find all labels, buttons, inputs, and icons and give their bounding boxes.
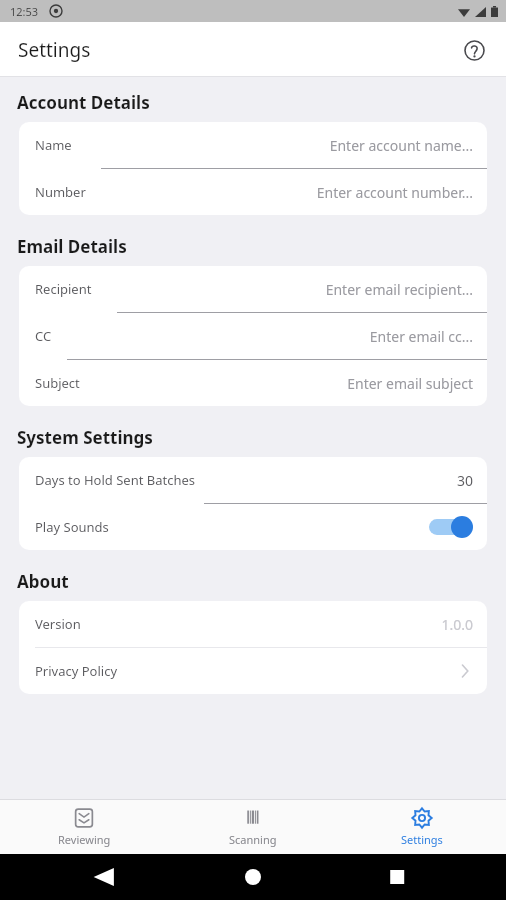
staticText: Settings <box>401 832 443 847</box>
staticText: Email Details <box>17 235 127 258</box>
button[interactable]: Reviewing <box>0 803 168 851</box>
staticText: System Settings <box>17 426 153 449</box>
button[interactable]: Subject <box>19 360 487 406</box>
button[interactable]: Play Sounds <box>19 504 487 550</box>
staticText: CC <box>35 327 52 345</box>
staticText: 1.0.0 <box>441 615 473 634</box>
button[interactable]: Settings <box>337 803 506 851</box>
button[interactable]: CC <box>19 313 487 359</box>
staticText: 12:53 <box>10 4 39 19</box>
staticText: Enter email subject <box>347 374 473 393</box>
staticText: Enter email cc... <box>369 327 473 346</box>
staticText: 30 <box>456 471 473 490</box>
button[interactable]: Help <box>454 30 494 70</box>
staticText: Version <box>35 615 81 633</box>
button[interactable]: Version <box>19 601 487 647</box>
staticText: Play Sounds <box>35 518 109 536</box>
staticText: Reviewing <box>58 832 111 847</box>
staticText: Scanning <box>229 832 277 847</box>
button[interactable]: Days to Hold Sent Batches <box>19 457 487 503</box>
staticText: Enter account name... <box>329 136 473 155</box>
staticText: Name <box>35 136 72 154</box>
staticText: Account Details <box>17 91 150 114</box>
staticText: Settings <box>18 37 91 63</box>
button[interactable]: Privacy Policy <box>19 648 487 694</box>
button[interactable]: Name <box>19 122 487 168</box>
staticText: About <box>17 570 69 593</box>
staticText: Enter account number... <box>316 183 473 202</box>
button[interactable]: Scanning <box>168 803 337 851</box>
staticText: Number <box>35 183 86 201</box>
button[interactable]: Number <box>19 169 487 215</box>
staticText: Privacy Policy <box>35 662 118 680</box>
staticText: Recipient <box>35 280 92 298</box>
staticText: Days to Hold Sent Batches <box>35 471 196 489</box>
staticText: Enter email recipient... <box>325 280 473 299</box>
staticText: Subject <box>35 374 80 392</box>
button[interactable]: Recipient <box>19 266 487 312</box>
